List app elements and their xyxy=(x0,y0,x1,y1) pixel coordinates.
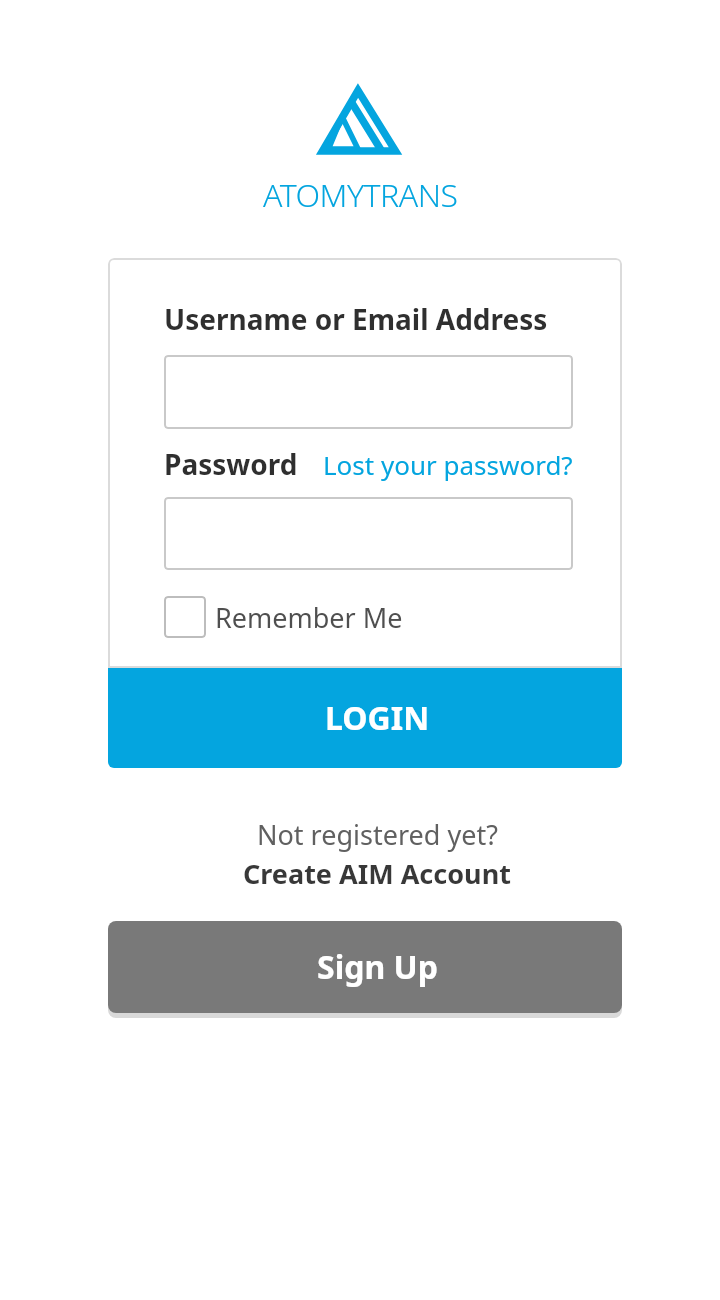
button[interactable] xyxy=(164,497,573,570)
staticText: Create AIM Account xyxy=(243,855,511,892)
staticText: Password xyxy=(164,445,298,483)
staticText: Remember Me xyxy=(215,599,403,636)
button[interactable]: Remember Me xyxy=(164,596,403,638)
staticText: Username or Email Address xyxy=(164,300,548,338)
staticText: Sign Up xyxy=(317,945,438,989)
staticText: Not registered yet? xyxy=(257,816,498,853)
button[interactable]: LOGIN xyxy=(108,668,622,768)
button[interactable] xyxy=(164,355,573,429)
staticText: ATOMYTRANS xyxy=(263,173,458,217)
button[interactable]: Sign Up xyxy=(108,921,622,1013)
staticText: LOGIN xyxy=(325,696,430,740)
button[interactable]: Lost your password? xyxy=(323,447,573,482)
